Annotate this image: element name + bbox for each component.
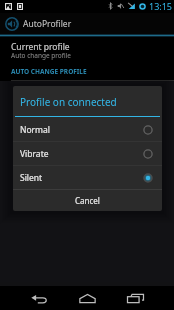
button[interactable]: Silent: [13, 166, 162, 189]
button[interactable]: Back: [15, 286, 63, 310]
button[interactable]: Cancel: [13, 190, 162, 211]
staticText: Vibrate: [20, 148, 49, 160]
button[interactable]: AutoProfiler: [3, 15, 20, 32]
staticText: Normal: [20, 124, 51, 136]
staticText: Cancel: [75, 195, 100, 206]
button[interactable]: Vibrate: [13, 142, 162, 165]
staticText: Auto change profile: [11, 51, 72, 60]
button[interactable]: Home: [63, 286, 111, 310]
staticText: AUTO CHANGE PROFILE: [11, 67, 87, 76]
button[interactable]: Recent apps: [111, 286, 159, 310]
staticText: 13:15: [149, 0, 173, 12]
staticText: Profile on connected: [20, 95, 117, 109]
button[interactable]: Normal: [13, 118, 162, 141]
staticText: AutoProfiler: [23, 18, 72, 30]
staticText: Current profile: [11, 41, 70, 53]
staticText: Silent: [20, 172, 43, 184]
